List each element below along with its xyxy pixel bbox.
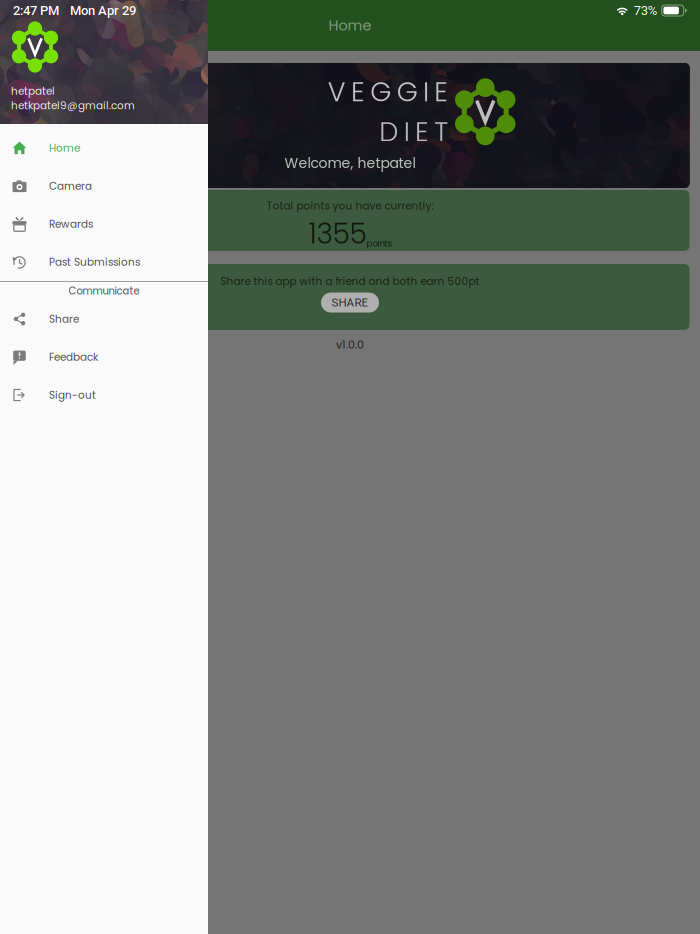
staticText: VEGGIE <box>328 73 448 111</box>
staticText: Share <box>49 312 79 326</box>
staticText: Feedback <box>49 350 98 364</box>
button[interactable]: Share <box>0 300 208 338</box>
staticText: Sign-out <box>49 388 96 402</box>
staticText: Home <box>49 141 80 155</box>
staticText: Past Submissions <box>49 255 140 269</box>
button[interactable]: SHARE <box>321 293 379 313</box>
staticText: points <box>366 237 391 249</box>
staticText: 2:47 PM <box>13 3 59 18</box>
staticText: Welcome, hetpatel <box>284 153 415 173</box>
staticText: Rewards <box>49 217 93 231</box>
staticText: Camera <box>49 179 92 193</box>
staticText: 1355 <box>308 214 366 253</box>
button[interactable]: Feedback <box>0 338 208 376</box>
staticText: hetpatel <box>11 84 55 98</box>
staticText: v1.0.0 <box>336 337 364 352</box>
button[interactable]: Home <box>0 129 208 167</box>
staticText: Communicate <box>68 284 139 298</box>
staticText: Share this app with a friend and both ea… <box>220 274 479 289</box>
staticText: Mon Apr 29 <box>70 3 136 18</box>
staticText: Home <box>328 15 371 36</box>
button[interactable]: Sign-out <box>0 376 208 414</box>
staticText: 73% <box>634 3 658 18</box>
staticText: hetkpatel9@gmail.com <box>11 98 135 113</box>
button[interactable]: Past Submissions <box>0 243 208 281</box>
button[interactable]: Camera <box>0 167 208 205</box>
button[interactable]: Rewards <box>0 205 208 243</box>
staticText: Total points you have currently: <box>266 199 433 213</box>
staticText: SHARE <box>331 296 368 309</box>
staticText: DIET <box>379 113 448 151</box>
